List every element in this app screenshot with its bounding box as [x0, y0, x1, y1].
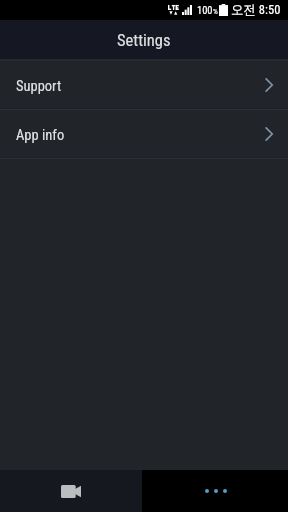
button[interactable]: More options [142, 470, 288, 512]
staticText: App info [16, 127, 65, 144]
staticText: 오전 8:50 [231, 2, 281, 18]
staticText: Settings [117, 31, 171, 50]
button[interactable]: Video call [0, 470, 142, 512]
staticText: Support [16, 78, 62, 95]
staticText: 100 [197, 4, 213, 16]
button[interactable]: App info [0, 110, 288, 157]
staticText: % [213, 7, 218, 16]
button[interactable]: Support [0, 61, 288, 108]
